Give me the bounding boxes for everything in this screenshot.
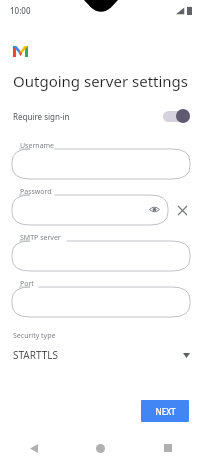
button[interactable]: Home [67, 434, 134, 462]
button[interactable]: SMTP server [12, 235, 190, 271]
staticText: Password [20, 187, 52, 197]
other: Require sign-in toggle [163, 109, 190, 123]
button[interactable]: Show password [147, 202, 161, 216]
staticText: Port [20, 279, 34, 289]
staticText: Outgoing server settings [13, 71, 189, 91]
staticText: 10:00 [10, 5, 31, 16]
button[interactable]: Password [12, 189, 168, 225]
staticText: SMTP server [20, 233, 61, 243]
button[interactable]: Back [0, 434, 67, 462]
staticText: Username [20, 141, 55, 151]
button[interactable]: Recent apps [134, 434, 201, 462]
staticText: Security type [13, 331, 56, 341]
staticText: Require sign-in [13, 111, 70, 122]
button[interactable]: Require sign-in [0, 103, 201, 129]
button[interactable]: Clear password [174, 202, 190, 218]
staticText: STARTTLS [13, 348, 59, 362]
button[interactable]: Username [12, 143, 190, 179]
button[interactable]: NEXT [141, 400, 189, 422]
button[interactable]: Port [12, 281, 190, 317]
button[interactable]: Security type [0, 331, 201, 362]
staticText: NEXT [155, 406, 176, 417]
